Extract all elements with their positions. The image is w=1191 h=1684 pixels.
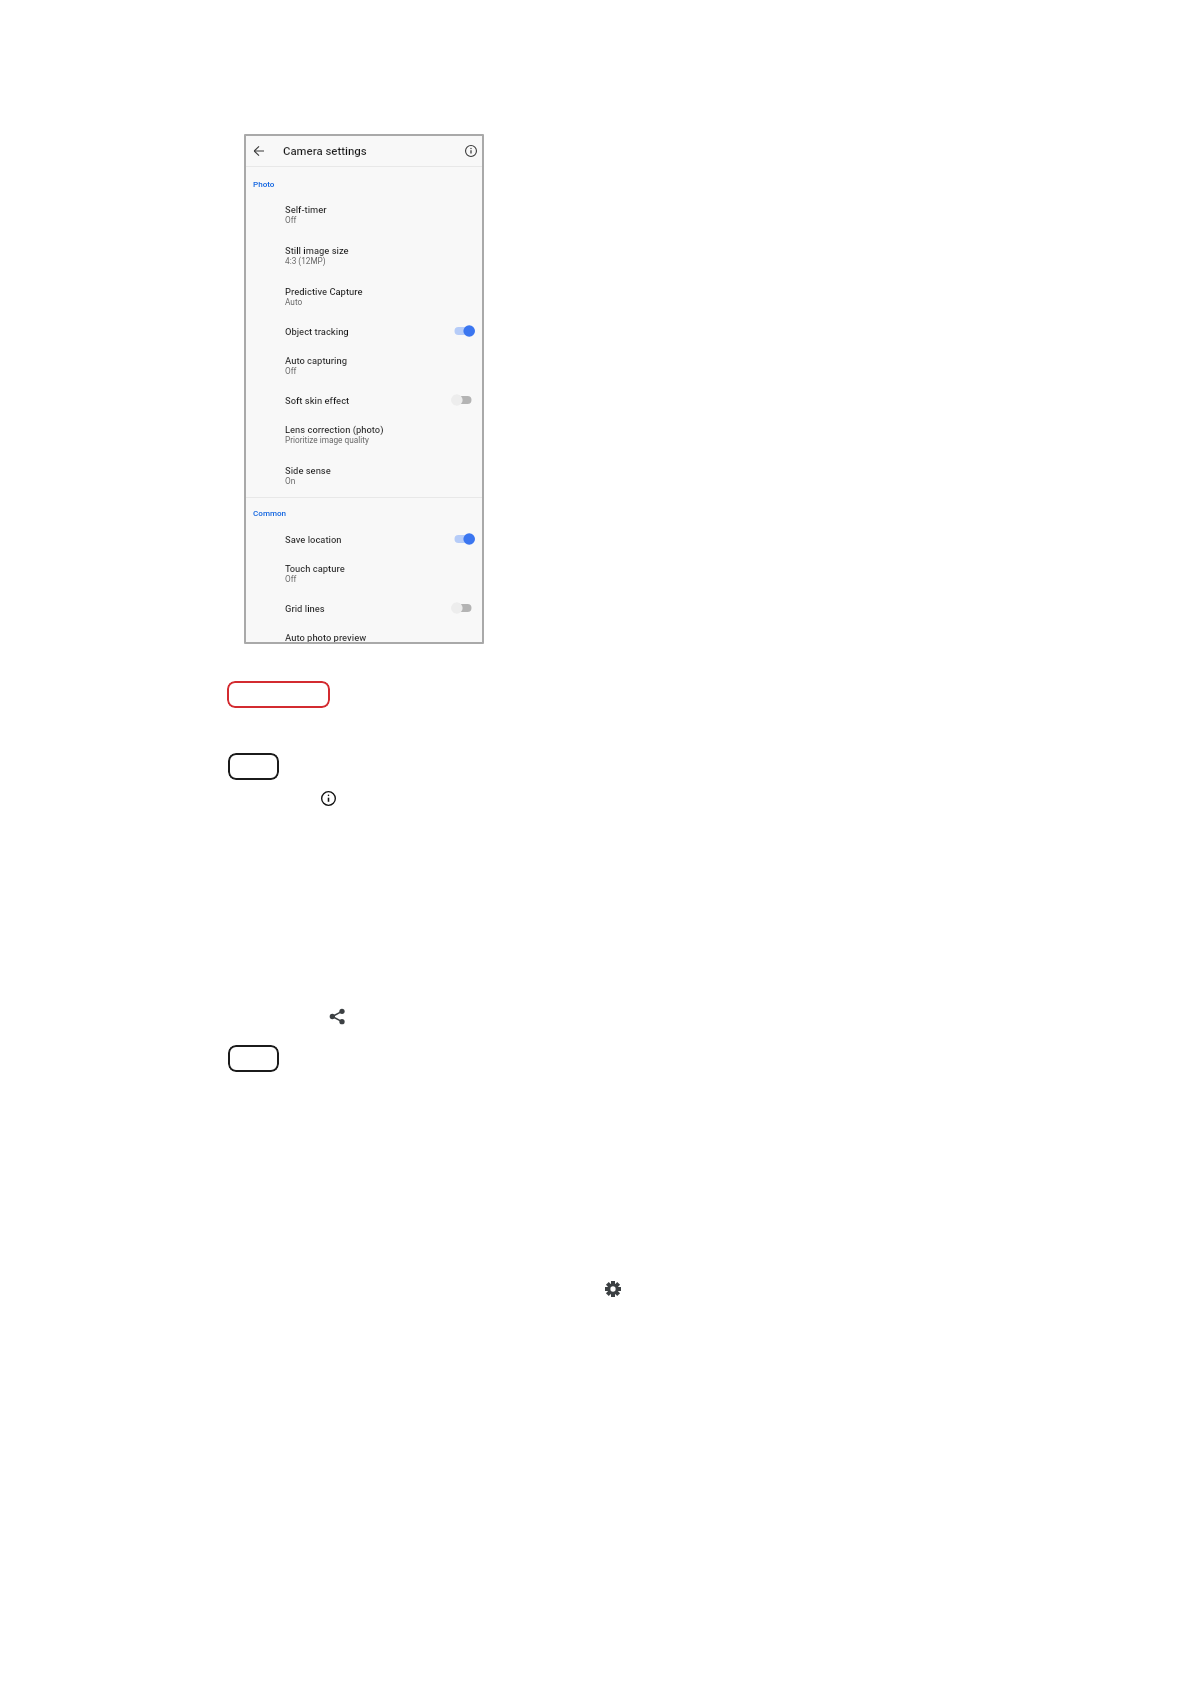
staticText: Off: [285, 366, 297, 376]
staticText: Off: [285, 574, 297, 584]
staticText: Side sense: [285, 465, 331, 476]
staticText: Self-timer: [285, 204, 327, 215]
staticText: Photo: [253, 179, 275, 188]
button[interactable]: Grid lines: [244, 594, 484, 622]
button[interactable]: Side sense: [244, 455, 484, 496]
button[interactable]: Auto capturing: [244, 345, 484, 386]
staticText: Off: [285, 215, 297, 225]
button[interactable]: Switch on: [451, 533, 475, 545]
staticText: 4:3 (12MP): [285, 256, 326, 266]
button[interactable]: Outlined button 2: [228, 1045, 279, 1072]
button[interactable]: Highlighted region: [227, 681, 330, 708]
staticText: Soft skin effect: [285, 395, 350, 406]
button[interactable]: Self-timer: [244, 194, 484, 235]
staticText: Still image size: [285, 245, 349, 256]
staticText: On: [285, 476, 296, 486]
staticText: Prioritize image quality: [285, 435, 369, 445]
button[interactable]: Information: [320, 790, 337, 807]
button[interactable]: Navigate back: [250, 142, 267, 159]
button[interactable]: Settings: [604, 1280, 622, 1298]
button[interactable]: Switch off: [451, 394, 475, 406]
staticText: Grid lines: [285, 603, 325, 614]
staticText: Lens correction (photo): [285, 424, 384, 435]
button[interactable]: Object tracking: [244, 317, 484, 345]
button[interactable]: Predictive Capture: [244, 276, 484, 317]
staticText: Auto: [285, 297, 303, 307]
staticText: Auto capturing: [285, 355, 347, 366]
staticText: Camera settings: [283, 144, 367, 157]
button[interactable]: Auto photo preview: [244, 622, 484, 644]
button[interactable]: Save location: [244, 525, 484, 553]
button[interactable]: Switch on: [451, 325, 475, 337]
button[interactable]: Touch capture: [244, 553, 484, 594]
button[interactable]: About camera settings: [462, 142, 479, 159]
button[interactable]: Lens correction (photo): [244, 414, 484, 455]
staticText: Common: [253, 508, 287, 517]
staticText: Object tracking: [285, 326, 349, 337]
staticText: Predictive Capture: [285, 286, 363, 297]
staticText: Save location: [285, 534, 342, 545]
button[interactable]: Still image size: [244, 235, 484, 276]
button[interactable]: Share: [329, 1008, 346, 1025]
button[interactable]: Outlined button: [228, 753, 279, 780]
staticText: Touch capture: [285, 563, 345, 574]
button[interactable]: Soft skin effect: [244, 386, 484, 414]
staticText: Auto photo preview: [285, 632, 367, 643]
button[interactable]: Switch off: [451, 602, 475, 614]
